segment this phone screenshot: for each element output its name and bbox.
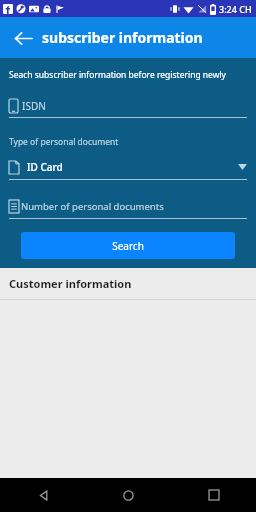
button[interactable]: Number of personal documents: [0, 198, 256, 219]
button[interactable]: Back: [0, 478, 86, 512]
staticText: Customer information: [9, 276, 132, 291]
button[interactable]: Home: [86, 478, 171, 512]
staticText: 3:24 CH: [219, 3, 252, 15]
button[interactable]: Search: [21, 232, 235, 259]
staticText: ISDN: [22, 99, 46, 113]
staticText: Type of personal document: [9, 136, 119, 148]
button[interactable]: Back: [8, 23, 38, 53]
button[interactable]: ID Card: [0, 158, 256, 180]
button[interactable]: ISDN: [0, 97, 256, 118]
button[interactable]: Recent apps: [171, 478, 256, 512]
staticText: subscriber information: [42, 28, 203, 47]
staticText: Number of personal documents: [21, 200, 164, 213]
staticText: Search: [112, 239, 144, 253]
staticText: ID Card: [27, 160, 63, 174]
staticText: Seach subscriber information before regi…: [9, 69, 226, 81]
